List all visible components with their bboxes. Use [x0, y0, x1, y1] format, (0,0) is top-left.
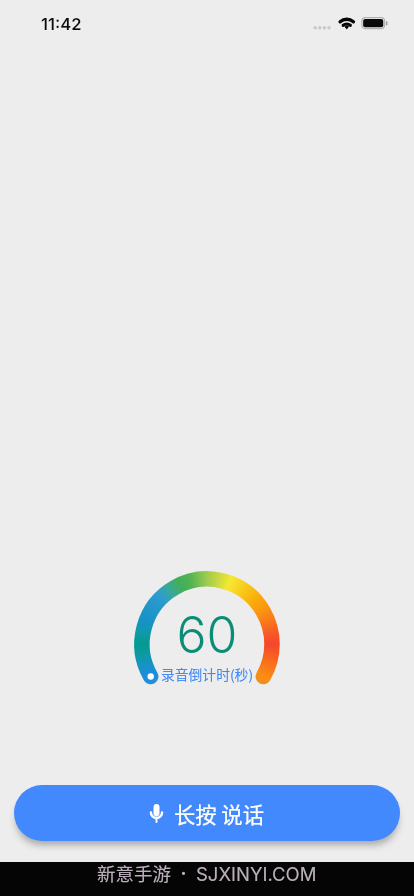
button[interactable]: 长按 说话: [14, 785, 400, 841]
staticText: SJXINYI.COM: [196, 863, 317, 885]
staticText: 11:42: [41, 14, 82, 34]
staticText: 新意手游: [97, 860, 172, 887]
staticText: 60: [127, 605, 287, 665]
staticText: •: [176, 862, 192, 884]
staticText: 长按 说话: [174, 798, 264, 829]
staticText: 录音倒计时(秒): [127, 664, 287, 684]
